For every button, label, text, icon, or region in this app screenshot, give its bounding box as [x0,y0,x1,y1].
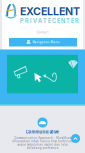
staticText: Communicative [25,129,59,135]
staticText: Navigation Menu [32,40,59,44]
staticText: P R I V A T E C E N T E R [20,17,79,24]
button[interactable]: Back to top [71,134,80,143]
button[interactable]: Contact [2,29,83,36]
button[interactable]: Navigation Menu [9,38,77,46]
staticText: Communicative Approach : Klasifikasi dih… [12,136,73,150]
staticText: Contact [36,31,48,34]
staticText: EXCELLENT [20,5,80,18]
